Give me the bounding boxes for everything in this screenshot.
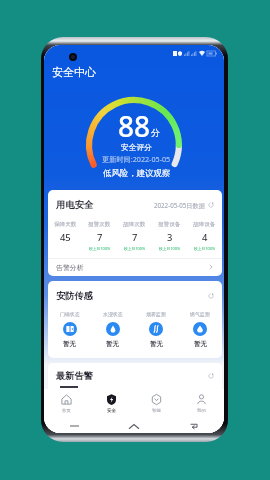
button[interactable]: Back xyxy=(164,419,224,433)
button[interactable]: 刷新 xyxy=(208,373,214,379)
staticText: 低风险，建议观察 xyxy=(103,168,171,179)
staticText: 故障设备 xyxy=(193,221,216,228)
staticText: 我的 xyxy=(197,408,206,414)
staticText: 用电安全 xyxy=(56,199,94,211)
staticText: 保障天数 xyxy=(54,221,77,228)
staticText: 3 xyxy=(167,231,173,244)
staticText: 安全中心 xyxy=(52,65,96,79)
staticText: 故障次数 xyxy=(123,221,146,228)
staticText: 7 xyxy=(132,231,138,244)
staticText: 安全评分 xyxy=(121,143,152,153)
button[interactable]: 水浸状态 xyxy=(91,311,134,348)
button[interactable]: 烟雾监测 xyxy=(134,311,178,348)
staticText: 燃气监测 xyxy=(190,311,210,317)
staticText: 最新告警 xyxy=(56,370,93,382)
button[interactable]: 我的 xyxy=(179,389,224,419)
staticText: 暂无 xyxy=(150,340,163,348)
staticText: 7 xyxy=(97,231,103,244)
staticText: 安防传感 xyxy=(56,290,93,302)
staticText: 告警分析 xyxy=(56,263,84,272)
staticText: 门磁状态 xyxy=(60,311,80,317)
staticText: 4 xyxy=(202,231,208,244)
staticText: 较上日100% xyxy=(89,246,111,251)
staticText: 较上日100% xyxy=(124,246,146,251)
button[interactable]: 刷新 xyxy=(208,293,214,299)
button[interactable]: 告警分析 xyxy=(48,258,222,276)
staticText: 报警设备 xyxy=(158,221,181,228)
staticText: 烟雾监测 xyxy=(146,311,166,317)
staticText: 2022-05-05日数据 xyxy=(154,201,205,209)
staticText: 较上日100% xyxy=(194,246,216,251)
button[interactable]: 门磁状态 xyxy=(48,311,91,348)
staticText: 暂无 xyxy=(194,340,207,348)
staticText: 较上日100% xyxy=(159,246,181,251)
button[interactable]: 燃气监测 xyxy=(178,311,222,348)
staticText: 首页 xyxy=(62,408,71,414)
staticText: 暂无 xyxy=(63,340,76,348)
button[interactable]: 首页 xyxy=(44,389,89,419)
button[interactable]: 智能 xyxy=(134,389,179,419)
button[interactable]: 刷新 xyxy=(208,202,214,208)
staticText: 88 xyxy=(118,107,151,145)
button[interactable]: 安全 xyxy=(89,389,134,419)
staticText: 分 xyxy=(151,127,160,138)
staticText: 暂无 xyxy=(106,340,119,348)
staticText: 智能 xyxy=(152,408,161,414)
staticText: 更新时间:2022-05-05 xyxy=(102,154,171,164)
button[interactable]: Recents xyxy=(44,419,104,433)
staticText: 安全 xyxy=(107,408,116,414)
staticText: 45 xyxy=(60,231,71,244)
button[interactable]: Home xyxy=(104,419,164,433)
staticText: 报警次数 xyxy=(88,221,111,228)
staticText: 水浸状态 xyxy=(103,311,123,317)
